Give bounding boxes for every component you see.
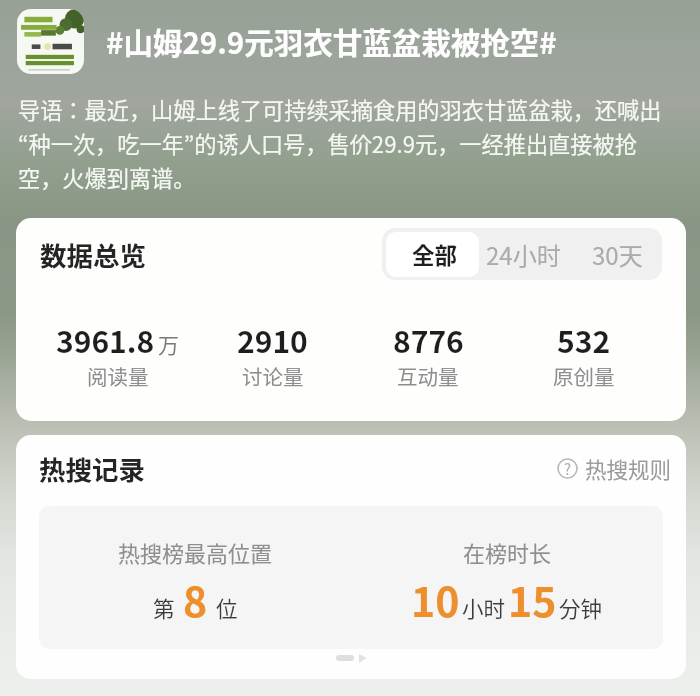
staticText: ?: [564, 458, 572, 479]
button[interactable]: 展开: [330, 650, 378, 666]
staticText: 阅读量: [87, 361, 149, 391]
staticText: 万: [158, 329, 179, 359]
staticText: 15: [508, 569, 557, 628]
staticText: 热搜记录: [39, 449, 145, 487]
staticText: 全部: [412, 238, 458, 271]
staticText: 导语：最近，山姆上线了可持续采摘食用的羽衣甘蓝盆栽，还喊出: [18, 93, 662, 125]
staticText: 第: [153, 592, 175, 623]
staticText: #山姆29.9元羽衣甘蓝盆栽被抢空#: [106, 20, 557, 63]
button[interactable]: 话题封面图: [17, 9, 84, 74]
staticText: 互动量: [397, 361, 459, 391]
staticText: 数据总览: [40, 235, 146, 273]
staticText: 热搜规则: [585, 453, 672, 484]
staticText: 讨论量: [242, 361, 304, 391]
staticText: “种一次，吃一年”的诱人口号，售价29.9元，一经推出直接被抢: [18, 127, 637, 159]
staticText: 2910: [237, 318, 308, 361]
staticText: 24小时: [486, 237, 561, 272]
staticText: 在榜时长: [463, 536, 552, 568]
staticText: 小时: [462, 592, 506, 623]
staticText: 532: [557, 318, 611, 361]
button[interactable]: 30天: [570, 228, 662, 280]
button[interactable]: 热搜规则: [557, 453, 672, 484]
button[interactable]: 全部: [386, 232, 479, 277]
button[interactable]: 24小时: [479, 228, 567, 280]
staticText: 10: [411, 569, 460, 628]
staticText: 3961.8: [56, 318, 155, 361]
staticText: 30天: [592, 237, 643, 272]
staticText: 热搜榜最高位置: [118, 536, 273, 568]
staticText: 分钟: [559, 592, 603, 623]
staticText: 8776: [393, 318, 464, 361]
staticText: 空，火爆到离谱。: [18, 161, 196, 193]
staticText: 8: [183, 569, 208, 628]
staticText: 原创量: [553, 361, 615, 391]
staticText: 位: [216, 592, 238, 623]
